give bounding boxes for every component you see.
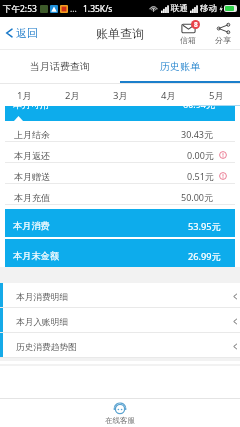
staticText: 返回 <box>16 26 38 40</box>
button[interactable]: 5月 <box>192 84 240 106</box>
staticText: 在线客服 <box>105 416 135 425</box>
staticText: 历史消费趋势图 <box>16 342 77 353</box>
button[interactable]: 本月消费明细 <box>0 283 240 307</box>
button[interactable]: 3月 <box>96 84 144 106</box>
staticText: ... <box>70 3 77 15</box>
staticText: 本月消费明细 <box>16 292 69 303</box>
staticText: 上月结余 <box>14 129 50 140</box>
button[interactable]: 信箱 <box>174 22 202 45</box>
button[interactable]: 在线客服 <box>105 402 135 425</box>
staticText: 本月充值 <box>14 192 50 203</box>
button[interactable]: 历史账单 <box>120 50 240 83</box>
staticText: 本月消费 <box>13 220 50 232</box>
staticText: 50.00元 <box>181 191 214 203</box>
button[interactable]: 本月入账明细 <box>0 308 240 332</box>
staticText: 8 <box>194 20 198 29</box>
staticText: 26.99元 <box>188 250 221 263</box>
staticText: 当月话费查询 <box>30 60 90 73</box>
button[interactable]: 分享 <box>209 22 237 45</box>
button[interactable]: 历史消费趋势图 <box>0 333 240 357</box>
button[interactable]: 4月 <box>144 84 192 106</box>
staticText: 本月可用 <box>13 106 49 110</box>
staticText: 3月 <box>113 89 128 102</box>
staticText: 历史账单 <box>160 60 200 73</box>
button[interactable]: 2月 <box>48 84 96 106</box>
staticText: 账单查询 <box>96 26 144 41</box>
staticText: 本月赠送 <box>14 171 50 182</box>
staticText: 5月 <box>209 89 224 102</box>
staticText: 1月 <box>17 89 32 102</box>
staticText: 移动 <box>200 3 217 14</box>
staticText: 0.51元 <box>187 170 214 182</box>
staticText: 本月末金额 <box>13 250 59 262</box>
button[interactable]: 返回 <box>5 26 38 40</box>
staticText: 1.35K/s <box>83 3 113 15</box>
staticText: 本月返还 <box>14 150 50 161</box>
staticText: 53.95元 <box>188 220 221 233</box>
staticText: 下午2:53 <box>3 3 37 15</box>
staticText: 30.43元 <box>181 128 214 140</box>
button[interactable]: 1月 <box>0 84 48 106</box>
button[interactable]: 当月话费查询 <box>0 50 120 83</box>
staticText: 联通 <box>171 3 188 14</box>
staticText: 本月入账明细 <box>16 317 69 328</box>
staticText: 4月 <box>161 89 176 102</box>
staticText: 信箱 <box>180 35 196 45</box>
staticText: 2月 <box>65 89 80 102</box>
staticText: 分享 <box>215 35 231 45</box>
staticText: 60.94元 <box>183 106 216 110</box>
staticText: 0.00元 <box>187 149 214 161</box>
